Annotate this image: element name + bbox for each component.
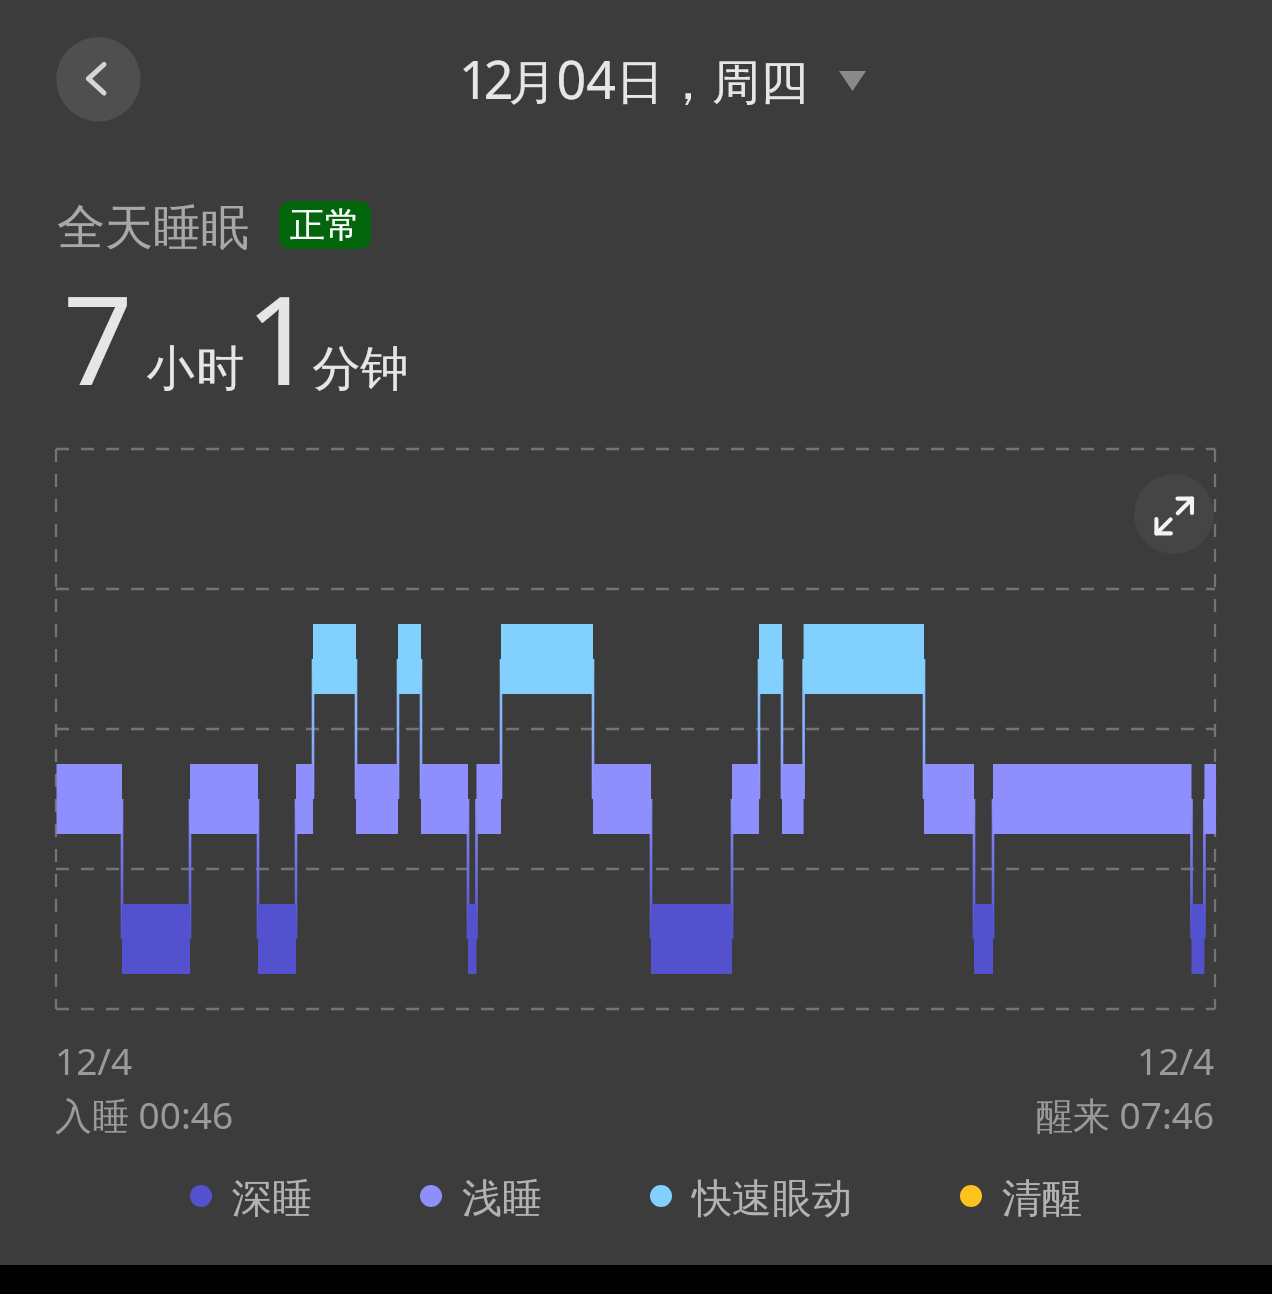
staticText: 12/4 bbox=[55, 1035, 133, 1085]
staticText: 入睡 00:46 bbox=[55, 1089, 234, 1140]
staticText: 深睡 bbox=[232, 1173, 312, 1223]
button[interactable]: Expand chart bbox=[1134, 474, 1214, 554]
staticText: 7小时1分钟 bbox=[63, 255, 409, 421]
staticText: 12/4 bbox=[1137, 1035, 1215, 1085]
button[interactable]: 浅睡 bbox=[420, 1173, 542, 1223]
staticText: 快速眼动 bbox=[692, 1173, 852, 1223]
staticText: 全天睡眠 bbox=[57, 198, 249, 258]
button[interactable]: 深睡 bbox=[190, 1173, 312, 1223]
staticText: 清醒 bbox=[1002, 1173, 1082, 1223]
button[interactable]: 清醒 bbox=[960, 1173, 1082, 1223]
staticText: 12月04日，周四 bbox=[459, 43, 808, 114]
staticText: 正常 bbox=[290, 203, 360, 247]
button[interactable]: Back bbox=[55, 36, 139, 120]
button[interactable]: 12月04日，周四 bbox=[453, 39, 814, 118]
button[interactable]: 快速眼动 bbox=[650, 1173, 852, 1223]
staticText: 浅睡 bbox=[462, 1173, 542, 1223]
staticText: 醒来 07:46 bbox=[1036, 1089, 1215, 1140]
